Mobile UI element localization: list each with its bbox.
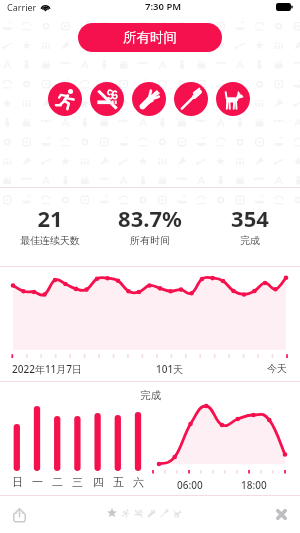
staticText: 06:00	[177, 478, 203, 492]
staticText: 83.7%	[118, 203, 182, 233]
button[interactable]: Share	[6, 502, 32, 528]
staticText: 四	[93, 475, 104, 489]
staticText: 所有时间	[123, 29, 177, 46]
staticText: 所有时间	[130, 234, 170, 247]
staticText: 日	[12, 475, 23, 489]
staticText: 最佳连续天数	[20, 234, 80, 247]
staticText: 三	[72, 475, 83, 489]
staticText: 六	[133, 475, 144, 489]
staticText: 完成	[240, 234, 260, 247]
button[interactable]: 所有时间	[78, 23, 222, 52]
staticText: 7:30 PM	[145, 0, 182, 13]
staticText: 18:00	[241, 478, 267, 492]
button[interactable]: Close	[268, 501, 294, 527]
staticText: 完成	[140, 389, 161, 402]
staticText: 一	[32, 475, 43, 489]
staticText: 五	[113, 475, 124, 489]
staticText: 2022年11月7日	[12, 362, 83, 376]
staticText: Carrier	[7, 1, 37, 13]
button[interactable]: Running	[48, 82, 82, 116]
button[interactable]: Brush teeth	[174, 82, 208, 116]
staticText: 21	[37, 203, 63, 233]
staticText: 今天	[267, 362, 287, 375]
button[interactable]: Vegetables	[132, 82, 166, 116]
button[interactable]: No smoking	[90, 82, 124, 116]
staticText: 101天	[156, 362, 184, 376]
button[interactable]: Walk the dog	[216, 82, 250, 116]
staticText: 354	[231, 203, 269, 233]
staticText: 二	[52, 475, 63, 489]
